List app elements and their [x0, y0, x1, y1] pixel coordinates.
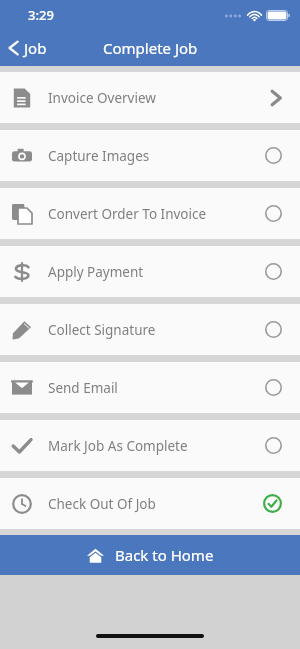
staticText: Back to Home — [115, 545, 214, 565]
button[interactable]: Back to Home — [0, 535, 300, 575]
staticText: Collect Signature — [48, 321, 156, 339]
staticText: Send Email — [48, 379, 118, 397]
staticText: Invoice Overview — [48, 89, 156, 107]
staticText: Apply Payment — [48, 263, 144, 281]
button[interactable]: Invoice Overview — [0, 72, 300, 123]
staticText: Check Out Of Job — [48, 495, 156, 513]
staticText: Job — [24, 38, 47, 58]
staticText: Complete Job — [103, 38, 198, 58]
staticText: Convert Order To Invoice — [48, 205, 207, 223]
button[interactable]: Check Out Of Job — [0, 478, 300, 529]
button[interactable]: Job — [0, 34, 57, 62]
staticText: 3:29 — [28, 6, 54, 24]
button[interactable]: Capture Images — [0, 130, 300, 181]
button[interactable]: Collect Signature — [0, 304, 300, 355]
button[interactable]: Apply Payment — [0, 246, 300, 297]
staticText: Capture Images — [48, 147, 150, 165]
button[interactable]: Convert Order To Invoice — [0, 188, 300, 239]
button[interactable]: Mark Job As Complete — [0, 420, 300, 471]
button[interactable]: Send Email — [0, 362, 300, 413]
staticText: Mark Job As Complete — [48, 437, 188, 455]
